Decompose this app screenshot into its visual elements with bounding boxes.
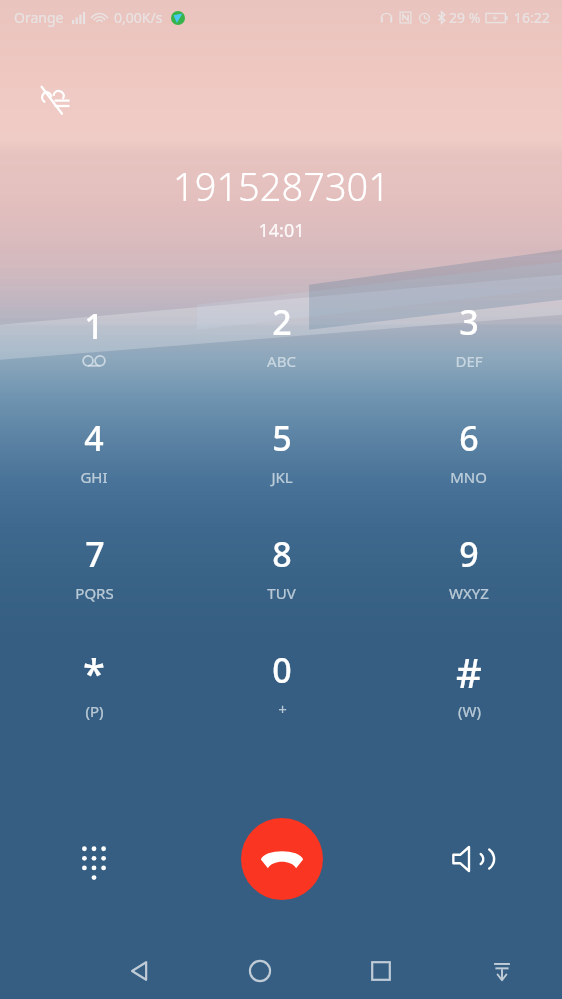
staticText: ABC	[267, 351, 296, 371]
staticText: 14:01	[258, 218, 305, 243]
staticText: TUV	[267, 583, 296, 603]
staticText: 8	[272, 531, 292, 577]
button[interactable]: 7	[0, 509, 188, 625]
staticText: 1	[84, 303, 104, 349]
button[interactable]: 9	[375, 509, 562, 625]
staticText: (W)	[458, 701, 481, 721]
staticText: 0,00K/s	[114, 8, 163, 27]
staticText: 16:22	[514, 8, 550, 27]
staticText: #	[456, 645, 482, 699]
staticText: 6	[459, 415, 479, 461]
button[interactable]: Back	[80, 943, 200, 999]
button[interactable]: 1	[0, 277, 188, 393]
button[interactable]: 0	[188, 625, 375, 741]
button[interactable]: Recents	[320, 943, 441, 999]
button[interactable]: Show dialpad	[0, 809, 188, 909]
staticText: (P)	[85, 701, 104, 721]
button[interactable]: 4	[0, 393, 188, 509]
button[interactable]: Speaker	[375, 809, 562, 909]
button[interactable]: 8	[188, 509, 375, 625]
button[interactable]: Home	[200, 943, 320, 999]
staticText: WXYZ	[449, 583, 489, 603]
button[interactable]: *	[0, 625, 188, 741]
staticText: 2	[272, 299, 292, 345]
button[interactable]: Hide navigation bar	[441, 943, 562, 999]
button[interactable]: #	[375, 625, 562, 741]
staticText: PQRS	[75, 583, 114, 603]
button[interactable]: 6	[375, 393, 562, 509]
staticText: 4	[84, 415, 104, 461]
staticText: 1915287301	[173, 160, 390, 212]
staticText: +	[278, 699, 287, 719]
button[interactable]: 5	[188, 393, 375, 509]
staticText: MNO	[450, 467, 487, 487]
button[interactable]: 3	[375, 277, 562, 393]
button[interactable]: Mute	[34, 78, 78, 122]
staticText: 7	[85, 531, 105, 577]
staticText: 3	[459, 299, 479, 345]
staticText: GHI	[80, 467, 108, 487]
staticText: 29 %	[449, 8, 481, 27]
staticText: 0	[272, 647, 292, 693]
staticText: Orange	[14, 8, 64, 27]
staticText: DEF	[455, 351, 483, 371]
staticText: JKL	[271, 467, 293, 487]
button[interactable]: End call	[241, 818, 323, 900]
staticText: 9	[459, 531, 479, 577]
staticText: *	[83, 645, 105, 699]
staticText: 5	[272, 415, 292, 461]
button[interactable]: 2	[188, 277, 375, 393]
